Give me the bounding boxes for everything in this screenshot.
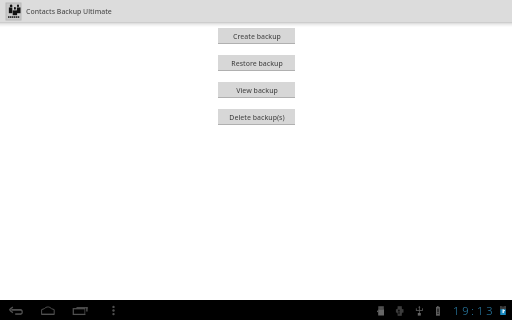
staticText: Contacts Backup Ultimate (26, 7, 112, 16)
button[interactable]: More options (104, 300, 122, 320)
button[interactable]: Home (35, 300, 63, 320)
staticText: Restore backup (231, 59, 283, 68)
button[interactable]: Notification (500, 306, 506, 315)
button[interactable]: Restore backup (218, 55, 295, 71)
button[interactable]: 19:13 (453, 300, 496, 320)
button[interactable]: View backup (218, 82, 295, 98)
staticText: Delete backup(s) (229, 113, 285, 122)
button[interactable]: Recent apps (67, 300, 95, 320)
staticText: Create backup (233, 32, 281, 41)
button[interactable]: Create backup (218, 28, 295, 44)
button[interactable]: Delete backup(s) (218, 109, 295, 125)
staticText: View backup (236, 86, 278, 95)
button[interactable]: Back (3, 300, 31, 320)
staticText: 19:13 (453, 303, 496, 318)
